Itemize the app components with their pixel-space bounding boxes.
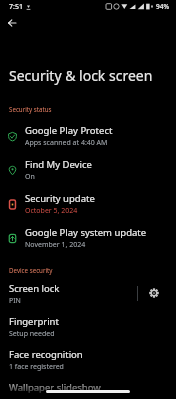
button[interactable]: Security update: [0, 187, 176, 221]
staticText: 7:51: [9, 2, 23, 12]
button[interactable]: Back: [2, 13, 22, 33]
button[interactable]: Screen lock: [0, 277, 137, 310]
staticText: Find My Device: [25, 158, 92, 171]
staticText: On: [25, 172, 35, 182]
staticText: Security & lock screen: [9, 66, 153, 85]
button[interactable]: Face recognition: [0, 343, 176, 376]
staticText: Device security: [9, 266, 53, 274]
staticText: Fingerprint: [9, 315, 59, 328]
staticText: Google Play system update: [25, 226, 147, 239]
button[interactable]: Screen lock settings: [138, 277, 176, 310]
staticText: Security update: [25, 192, 95, 205]
staticText: Screen lock: [9, 282, 60, 295]
staticText: Security status: [9, 105, 52, 113]
button[interactable]: Find My Device: [0, 153, 176, 187]
staticText: November 1, 2024: [25, 240, 86, 250]
staticText: Wallpaper slideshow: [9, 381, 101, 394]
staticText: Setup needed: [9, 329, 55, 339]
button[interactable]: Google Play Protect: [0, 119, 176, 153]
staticText: PIN: [9, 296, 21, 306]
staticText: October 5, 2024: [25, 206, 78, 216]
staticText: Apps scanned at 4:40 AM: [25, 138, 108, 148]
button[interactable]: Google Play system update: [0, 221, 176, 255]
staticText: 94%: [156, 2, 169, 11]
staticText: Google Play Protect: [25, 124, 113, 137]
staticText: 1 face registered: [9, 362, 64, 372]
button[interactable]: Fingerprint: [0, 310, 176, 343]
staticText: Face recognition: [9, 348, 83, 361]
button[interactable]: Wallpaper slideshow: [0, 381, 176, 399]
